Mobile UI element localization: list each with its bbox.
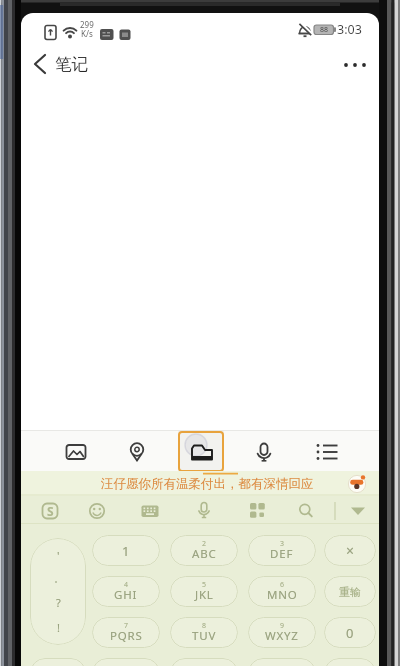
- button[interactable]: [189, 497, 219, 525]
- button[interactable]: 4: [92, 576, 160, 607]
- button[interactable]: 2: [170, 535, 238, 566]
- button[interactable]: 0: [324, 617, 376, 648]
- button[interactable]: [117, 432, 157, 472]
- button[interactable]: 9: [248, 617, 316, 648]
- staticText: 3: [280, 539, 285, 549]
- button[interactable]: [82, 497, 112, 525]
- staticText: !: [57, 620, 60, 635]
- button[interactable]: [306, 432, 346, 472]
- button[interactable]: ': [30, 538, 86, 645]
- staticText: ×: [346, 541, 355, 560]
- staticText: 汪仔愿你所有温柔付出，都有深情回应: [101, 476, 314, 492]
- button[interactable]: 5: [170, 576, 238, 607]
- staticText: ABC: [192, 546, 217, 562]
- button[interactable]: [243, 497, 273, 525]
- staticText: 2: [202, 539, 207, 549]
- staticText: 7: [124, 621, 129, 631]
- button[interactable]: [347, 474, 367, 494]
- button[interactable]: [291, 497, 321, 525]
- button[interactable]: 7: [92, 617, 160, 648]
- button[interactable]: [133, 497, 167, 525]
- staticText: ?: [56, 595, 61, 610]
- button[interactable]: [56, 432, 96, 472]
- button[interactable]: [244, 432, 284, 472]
- staticText: 0: [346, 624, 354, 642]
- staticText: GHI: [114, 587, 138, 603]
- staticText: 9: [280, 621, 285, 631]
- staticText: 笔记: [55, 54, 88, 75]
- staticText: 1: [122, 542, 130, 560]
- staticText: TUV: [192, 628, 217, 644]
- staticText: 88: [320, 25, 329, 35]
- staticText: 8: [202, 621, 207, 631]
- button[interactable]: 8: [170, 617, 238, 648]
- staticText: 6: [280, 580, 285, 590]
- staticText: ': [57, 548, 60, 563]
- staticText: 重输: [339, 585, 361, 599]
- staticText: DEF: [270, 546, 294, 562]
- button[interactable]: 3: [248, 535, 316, 566]
- button[interactable]: [178, 431, 224, 472]
- staticText: 5: [202, 580, 207, 590]
- button[interactable]: 重输: [324, 576, 376, 607]
- staticText: 4: [124, 580, 129, 590]
- staticText: S: [47, 503, 54, 519]
- button[interactable]: [343, 497, 373, 525]
- button[interactable]: [324, 658, 376, 666]
- staticText: 3:03: [337, 21, 362, 37]
- staticText: JKL: [195, 587, 214, 603]
- button[interactable]: [92, 658, 160, 666]
- staticText: K/s: [81, 28, 93, 38]
- button[interactable]: [28, 48, 52, 78]
- button[interactable]: 6: [248, 576, 316, 607]
- button[interactable]: [30, 658, 86, 666]
- button[interactable]: [336, 52, 374, 78]
- button[interactable]: 汪仔愿你所有温柔付出，都有深情回应: [21, 471, 379, 496]
- staticText: 。: [54, 573, 63, 584]
- staticText: MNO: [267, 587, 298, 603]
- button[interactable]: [35, 497, 65, 525]
- button[interactable]: [248, 658, 316, 666]
- button[interactable]: 1: [92, 535, 160, 566]
- staticText: WXYZ: [265, 628, 299, 644]
- staticText: 299: [80, 19, 94, 29]
- staticText: PQRS: [110, 628, 143, 644]
- button[interactable]: ×: [324, 535, 376, 566]
- button[interactable]: [170, 658, 238, 666]
